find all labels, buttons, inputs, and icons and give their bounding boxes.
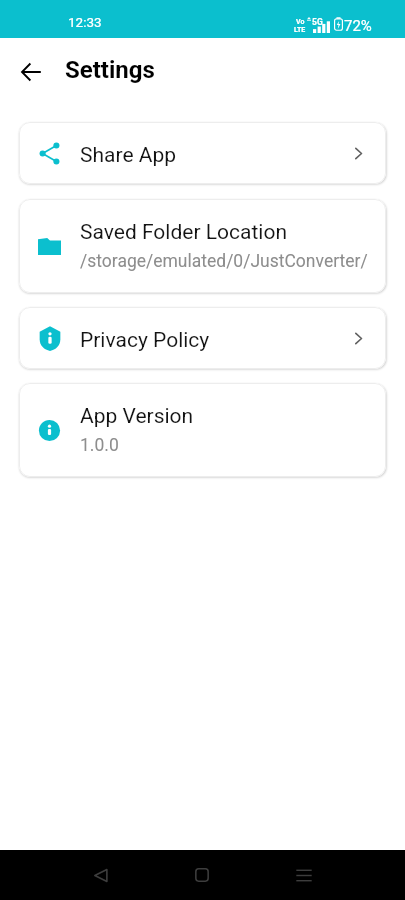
button[interactable]: Home	[151, 850, 253, 900]
staticText: Saved Folder Location	[80, 220, 287, 245]
staticText: 12:33	[68, 14, 102, 30]
staticText: LTE	[294, 26, 306, 34]
button[interactable]: Privacy Policy	[19, 307, 386, 369]
staticText: 1.0.0	[80, 435, 119, 456]
button[interactable]: Back	[11, 52, 51, 92]
staticText: 5G	[312, 17, 323, 27]
button[interactable]: Menu	[253, 850, 355, 900]
button[interactable]: Saved Folder Location	[19, 199, 386, 293]
staticText: /storage/emulated/0/JustConverter/	[80, 251, 368, 272]
button[interactable]: App Version	[19, 383, 386, 477]
button[interactable]: Back	[50, 850, 151, 900]
staticText: 72%	[344, 17, 372, 35]
staticText: Share App	[80, 143, 177, 168]
staticText: Settings	[65, 56, 155, 84]
staticText: Vo	[296, 18, 305, 26]
staticText: App Version	[80, 404, 194, 429]
button[interactable]: Share App	[19, 122, 386, 184]
staticText: Privacy Policy	[80, 328, 210, 353]
